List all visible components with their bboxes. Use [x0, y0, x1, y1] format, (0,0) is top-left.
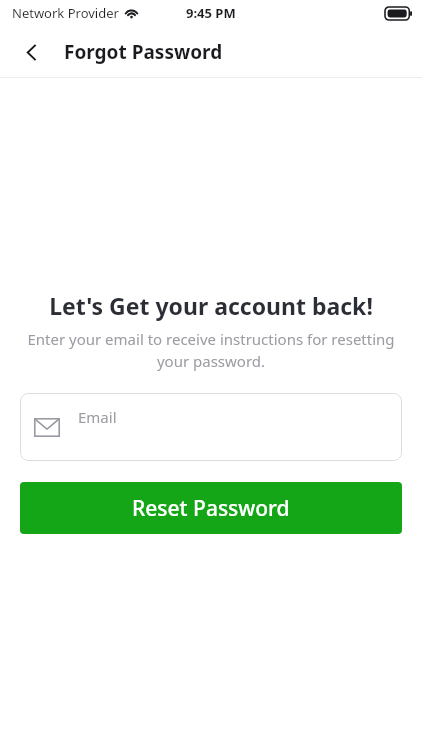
- staticText: 9:45 PM: [186, 4, 236, 22]
- staticText: Forgot Password: [64, 39, 223, 65]
- staticText: Email: [78, 407, 117, 427]
- staticText: Let's Get your account back!: [16, 290, 406, 321]
- button[interactable]: Email: [20, 393, 402, 461]
- button[interactable]: Back: [13, 34, 49, 70]
- button[interactable]: Reset Password: [20, 482, 402, 534]
- staticText: Enter your email to receive instructions…: [26, 329, 396, 372]
- staticText: Network Provider: [12, 4, 119, 22]
- staticText: Reset Password: [132, 494, 290, 523]
